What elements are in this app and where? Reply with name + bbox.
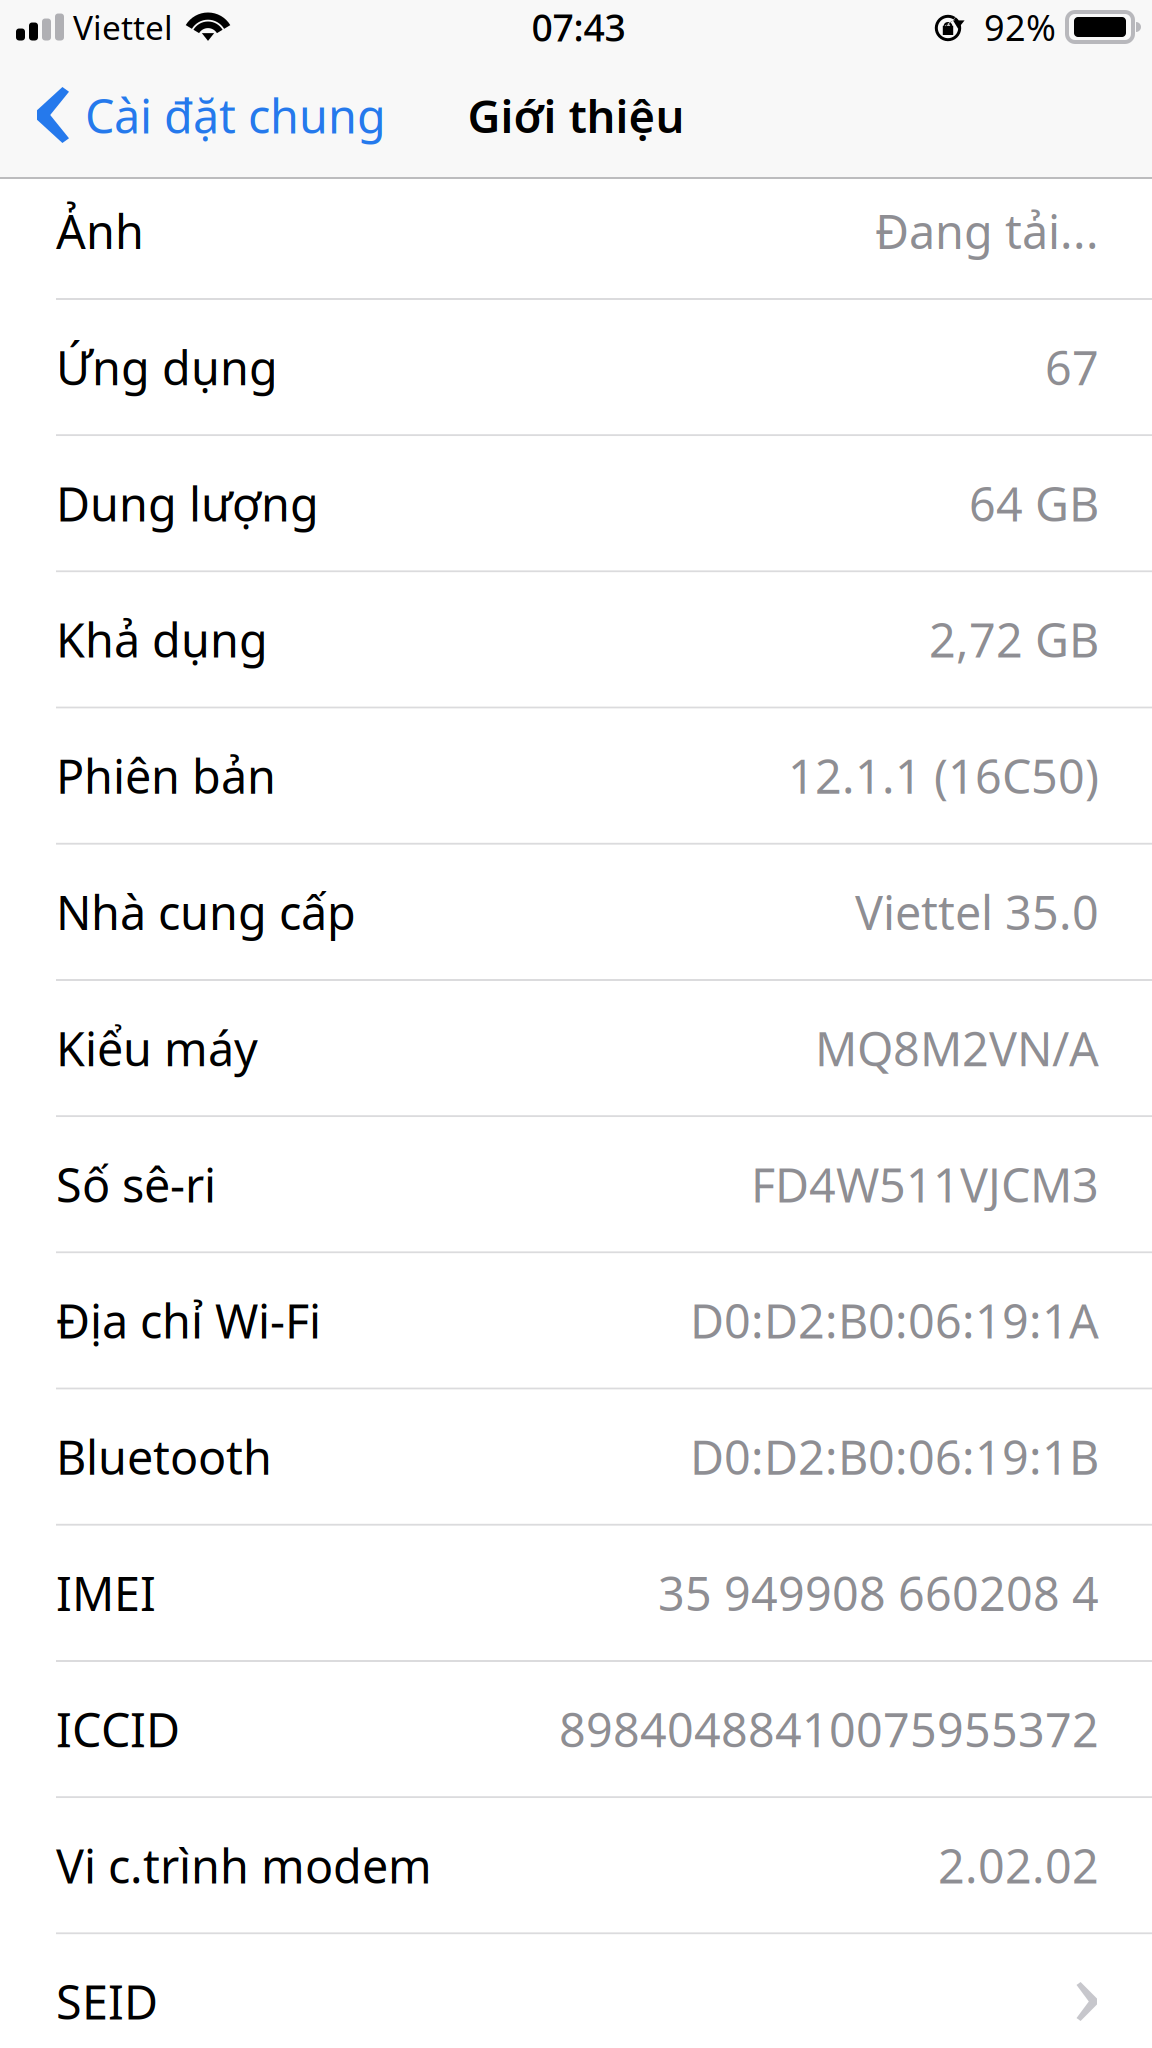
button[interactable]: Số sê-ri bbox=[0, 1117, 1152, 1253]
staticText: 89840488410075955372 bbox=[559, 1698, 1099, 1760]
button[interactable]: Nhà cung cấp bbox=[0, 845, 1152, 981]
button[interactable]: Địa chỉ Wi-Fi bbox=[0, 1253, 1152, 1390]
staticText: Viettel 35.0 bbox=[855, 881, 1099, 943]
staticText: 64 GB bbox=[969, 472, 1099, 534]
staticText: Ứng dụng bbox=[56, 336, 278, 398]
staticText: FD4W511VJCM3 bbox=[751, 1153, 1099, 1215]
staticText: Giới thiệu bbox=[467, 85, 684, 146]
staticText: Dung lượng bbox=[56, 472, 319, 534]
staticText: Số sê-ri bbox=[56, 1153, 216, 1215]
button[interactable]: Dung lượng bbox=[0, 436, 1152, 572]
staticText: Đang tải... bbox=[875, 200, 1099, 262]
button[interactable]: SEID bbox=[0, 1934, 1152, 2048]
button[interactable]: IMEI bbox=[0, 1526, 1152, 1662]
button[interactable]: Khả dụng bbox=[0, 572, 1152, 709]
staticText: 92% bbox=[984, 3, 1056, 51]
staticText: 67 bbox=[1045, 336, 1099, 398]
staticText: D0:D2:B0:06:19:1A bbox=[690, 1289, 1099, 1351]
staticText: Địa chỉ Wi-Fi bbox=[56, 1289, 321, 1351]
staticText: Khả dụng bbox=[56, 608, 268, 670]
staticText: 12.1.1 (16C50) bbox=[788, 745, 1099, 807]
staticText: 2.02.02 bbox=[938, 1834, 1099, 1896]
staticText: IMEI bbox=[56, 1562, 156, 1624]
staticText: 35 949908 660208 4 bbox=[658, 1562, 1099, 1624]
staticText: Viettel bbox=[73, 5, 173, 49]
button[interactable]: Vi c.trình modem bbox=[0, 1798, 1152, 1934]
button[interactable]: Kiểu máy bbox=[0, 981, 1152, 1117]
button[interactable]: Cài đặt chung bbox=[0, 54, 400, 177]
staticText: D0:D2:B0:06:19:1B bbox=[690, 1426, 1099, 1488]
staticText: ICCID bbox=[56, 1698, 180, 1760]
staticText: Vi c.trình modem bbox=[56, 1834, 432, 1896]
staticText: MQ8M2VN/A bbox=[815, 1017, 1099, 1079]
staticText: Bluetooth bbox=[56, 1426, 272, 1488]
button[interactable]: ICCID bbox=[0, 1662, 1152, 1798]
staticText: Cài đặt chung bbox=[85, 84, 386, 146]
staticText: Kiểu máy bbox=[56, 1017, 258, 1079]
staticText: 2,72 GB bbox=[929, 608, 1099, 670]
button[interactable]: Ứng dụng bbox=[0, 300, 1152, 436]
staticText: 07:43 bbox=[531, 2, 625, 52]
button[interactable]: Bluetooth bbox=[0, 1390, 1152, 1526]
button[interactable]: Ảnh bbox=[0, 164, 1152, 300]
staticText: Phiên bản bbox=[56, 745, 276, 807]
staticText: Ảnh bbox=[56, 200, 144, 262]
button[interactable]: Phiên bản bbox=[0, 709, 1152, 845]
staticText: SEID bbox=[56, 1970, 158, 2032]
staticText: Nhà cung cấp bbox=[56, 881, 356, 943]
